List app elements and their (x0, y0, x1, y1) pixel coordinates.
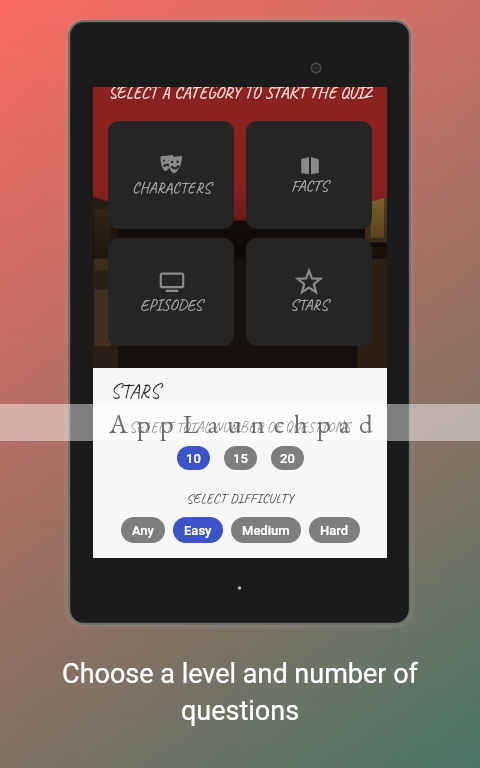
staticText: EPISODES (140, 295, 203, 315)
button[interactable]: CHARACTERS category (108, 121, 234, 229)
staticText: SELECT TOTAL NUMBER OF QUESTIONS (129, 418, 351, 437)
staticText: SELECT A CATEGORY TO START THE QUIZ (108, 87, 373, 99)
button[interactable]: 15 (224, 446, 257, 470)
staticText: CHARACTERS (132, 178, 211, 198)
staticText: Choose a level and number of questions (45, 658, 435, 727)
button[interactable]: Medium (231, 517, 301, 543)
staticText: Hard (320, 523, 349, 538)
button[interactable]: EPISODES category (108, 238, 234, 346)
button[interactable]: STARS category (246, 238, 372, 346)
button[interactable]: Any (121, 517, 165, 543)
staticText: STARS (110, 378, 160, 404)
button[interactable]: Easy (173, 517, 223, 543)
staticText: Easy (184, 523, 212, 538)
staticText: AppLaunchpad (109, 406, 382, 441)
staticText: 20 (280, 451, 295, 466)
button[interactable]: FACTS category (246, 121, 372, 229)
button[interactable]: 20 (271, 446, 304, 470)
button[interactable]: Hard (309, 517, 360, 543)
staticText: SELECT DIFFICULTY (186, 490, 294, 508)
staticText: Any (132, 523, 154, 538)
staticText: 15 (233, 451, 248, 466)
staticText: STARS (290, 295, 328, 315)
staticText: FACTS (291, 176, 328, 196)
staticText: Medium (242, 523, 290, 538)
staticText: 10 (186, 451, 201, 466)
button[interactable]: 10 (177, 446, 210, 470)
